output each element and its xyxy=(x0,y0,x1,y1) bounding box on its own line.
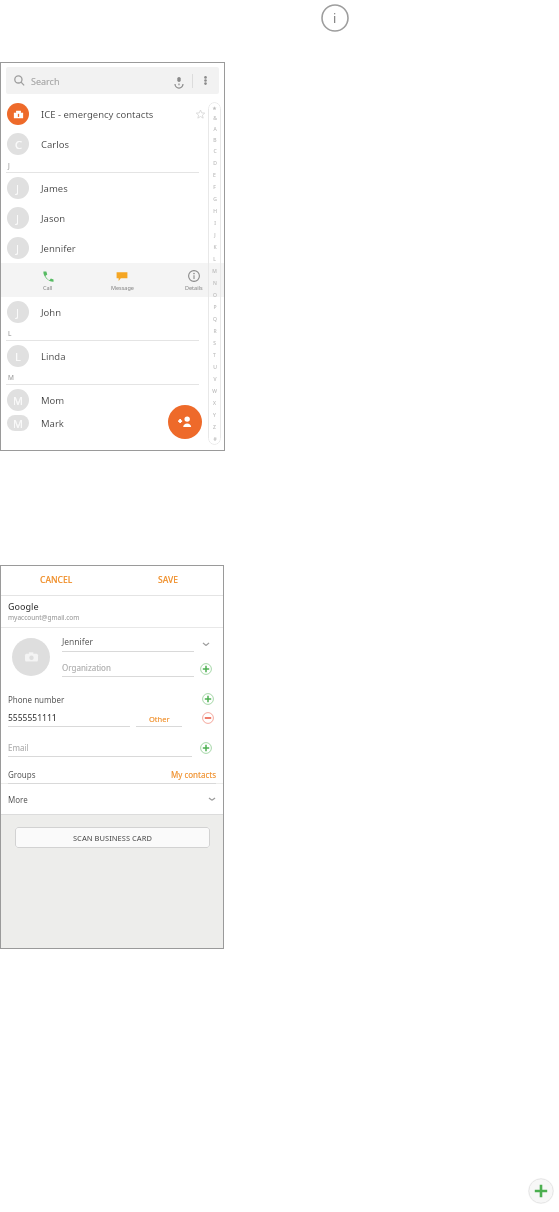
staticText: X xyxy=(213,400,216,407)
staticText: Q xyxy=(213,316,217,323)
button[interactable]: CANCEL xyxy=(0,565,112,595)
staticText: G xyxy=(213,196,217,203)
staticText: S xyxy=(213,340,216,347)
staticText: More xyxy=(8,794,28,805)
staticText: J xyxy=(16,211,20,226)
button[interactable]: M xyxy=(0,415,225,431)
button[interactable]: SCAN BUSINESS CARD xyxy=(15,827,210,848)
staticText: # xyxy=(213,436,217,443)
staticText: M xyxy=(13,393,23,408)
staticText: A xyxy=(213,126,217,133)
staticText: Y xyxy=(213,412,216,419)
staticText: L xyxy=(213,256,216,263)
staticText: J xyxy=(8,161,10,170)
button[interactable]: Details xyxy=(172,270,216,291)
button[interactable]: M xyxy=(0,385,225,415)
staticText: D xyxy=(213,160,217,167)
staticText: H xyxy=(213,208,217,215)
button[interactable]: Expand name xyxy=(194,636,218,652)
staticText: Call xyxy=(43,284,53,291)
staticText: W xyxy=(212,388,217,395)
staticText: B xyxy=(213,137,217,144)
button[interactable]: Add email xyxy=(192,739,220,757)
staticText: V xyxy=(213,376,217,383)
staticText: T xyxy=(213,352,216,359)
button[interactable]: Call xyxy=(26,270,70,291)
staticText: Search xyxy=(31,75,60,87)
other: Voice search xyxy=(173,75,185,87)
staticText: P xyxy=(213,304,217,311)
button[interactable]: Search xyxy=(6,67,219,94)
staticText: F xyxy=(213,184,216,191)
staticText: Google xyxy=(8,600,39,612)
button[interactable]: Remove phone number xyxy=(196,709,220,727)
staticText: M xyxy=(212,268,217,275)
staticText: Organization xyxy=(62,662,111,673)
other: Favourite xyxy=(196,110,205,119)
staticText: Carlos xyxy=(41,138,70,151)
staticText: Mom xyxy=(41,394,65,407)
button[interactable]: More xyxy=(0,790,224,808)
button[interactable]: Alphabet index xyxy=(208,102,221,445)
staticText: J xyxy=(16,181,20,196)
button[interactable]: J xyxy=(0,203,225,233)
button[interactable]: J xyxy=(0,297,225,327)
staticText: 5555551111 xyxy=(8,712,57,724)
staticText: Jennifer xyxy=(62,636,94,648)
staticText: Email xyxy=(8,742,29,753)
staticText: M xyxy=(8,373,14,382)
staticText: myaccount@gmail.com xyxy=(8,613,80,622)
staticText: K xyxy=(213,244,217,251)
button[interactable]: L xyxy=(0,341,225,371)
staticText: Phone number xyxy=(8,694,65,705)
staticText: ★ xyxy=(212,105,217,111)
button[interactable]: Add contact xyxy=(168,405,202,439)
staticText: U xyxy=(213,364,217,371)
staticText: L xyxy=(15,349,21,364)
staticText: Jennifer xyxy=(41,242,76,255)
button[interactable]: Message xyxy=(100,270,144,291)
button[interactable]: Add organization xyxy=(194,661,218,677)
staticText: L xyxy=(8,329,12,338)
button[interactable]: J xyxy=(0,233,225,263)
button[interactable]: Groups xyxy=(0,765,224,783)
staticText: CANCEL xyxy=(40,574,73,586)
staticText: Jason xyxy=(41,212,66,225)
staticText: E xyxy=(213,172,216,179)
button[interactable]: C xyxy=(0,129,225,159)
button[interactable]: Add photo xyxy=(12,638,50,676)
staticText: SAVE xyxy=(158,574,178,586)
staticText: I xyxy=(214,220,216,227)
staticText: J xyxy=(214,232,216,239)
staticText: & xyxy=(213,115,217,122)
staticText: SCAN BUSINESS CARD xyxy=(73,833,152,843)
staticText: Linda xyxy=(41,350,66,363)
staticText: O xyxy=(213,292,217,299)
staticText: Mark xyxy=(41,417,64,430)
button[interactable]: SAVE xyxy=(112,565,224,595)
button[interactable]: Info xyxy=(319,2,351,34)
staticText: N xyxy=(213,280,217,287)
staticText: Groups xyxy=(8,769,36,780)
button[interactable]: Add xyxy=(528,1178,554,1204)
button[interactable]: Other xyxy=(136,714,182,727)
staticText: C xyxy=(213,148,217,155)
staticText: C xyxy=(15,137,22,152)
button[interactable]: J xyxy=(0,173,225,203)
staticText: J xyxy=(16,305,20,320)
staticText: i xyxy=(333,9,337,27)
staticText: John xyxy=(41,306,62,319)
button[interactable]: Add phone number xyxy=(196,691,220,707)
staticText: M xyxy=(13,416,23,431)
staticText: J xyxy=(16,241,20,256)
button[interactable]: ICE - emergency contacts xyxy=(0,99,225,129)
staticText: ICE - emergency contacts xyxy=(41,108,154,121)
staticText: R xyxy=(213,328,217,335)
other: More options xyxy=(200,75,211,86)
staticText: Z xyxy=(213,424,216,431)
staticText: Details xyxy=(185,284,203,291)
staticText: Message xyxy=(111,284,134,291)
staticText: James xyxy=(41,182,68,195)
staticText: Other xyxy=(149,714,170,724)
staticText: My contacts xyxy=(171,769,216,780)
